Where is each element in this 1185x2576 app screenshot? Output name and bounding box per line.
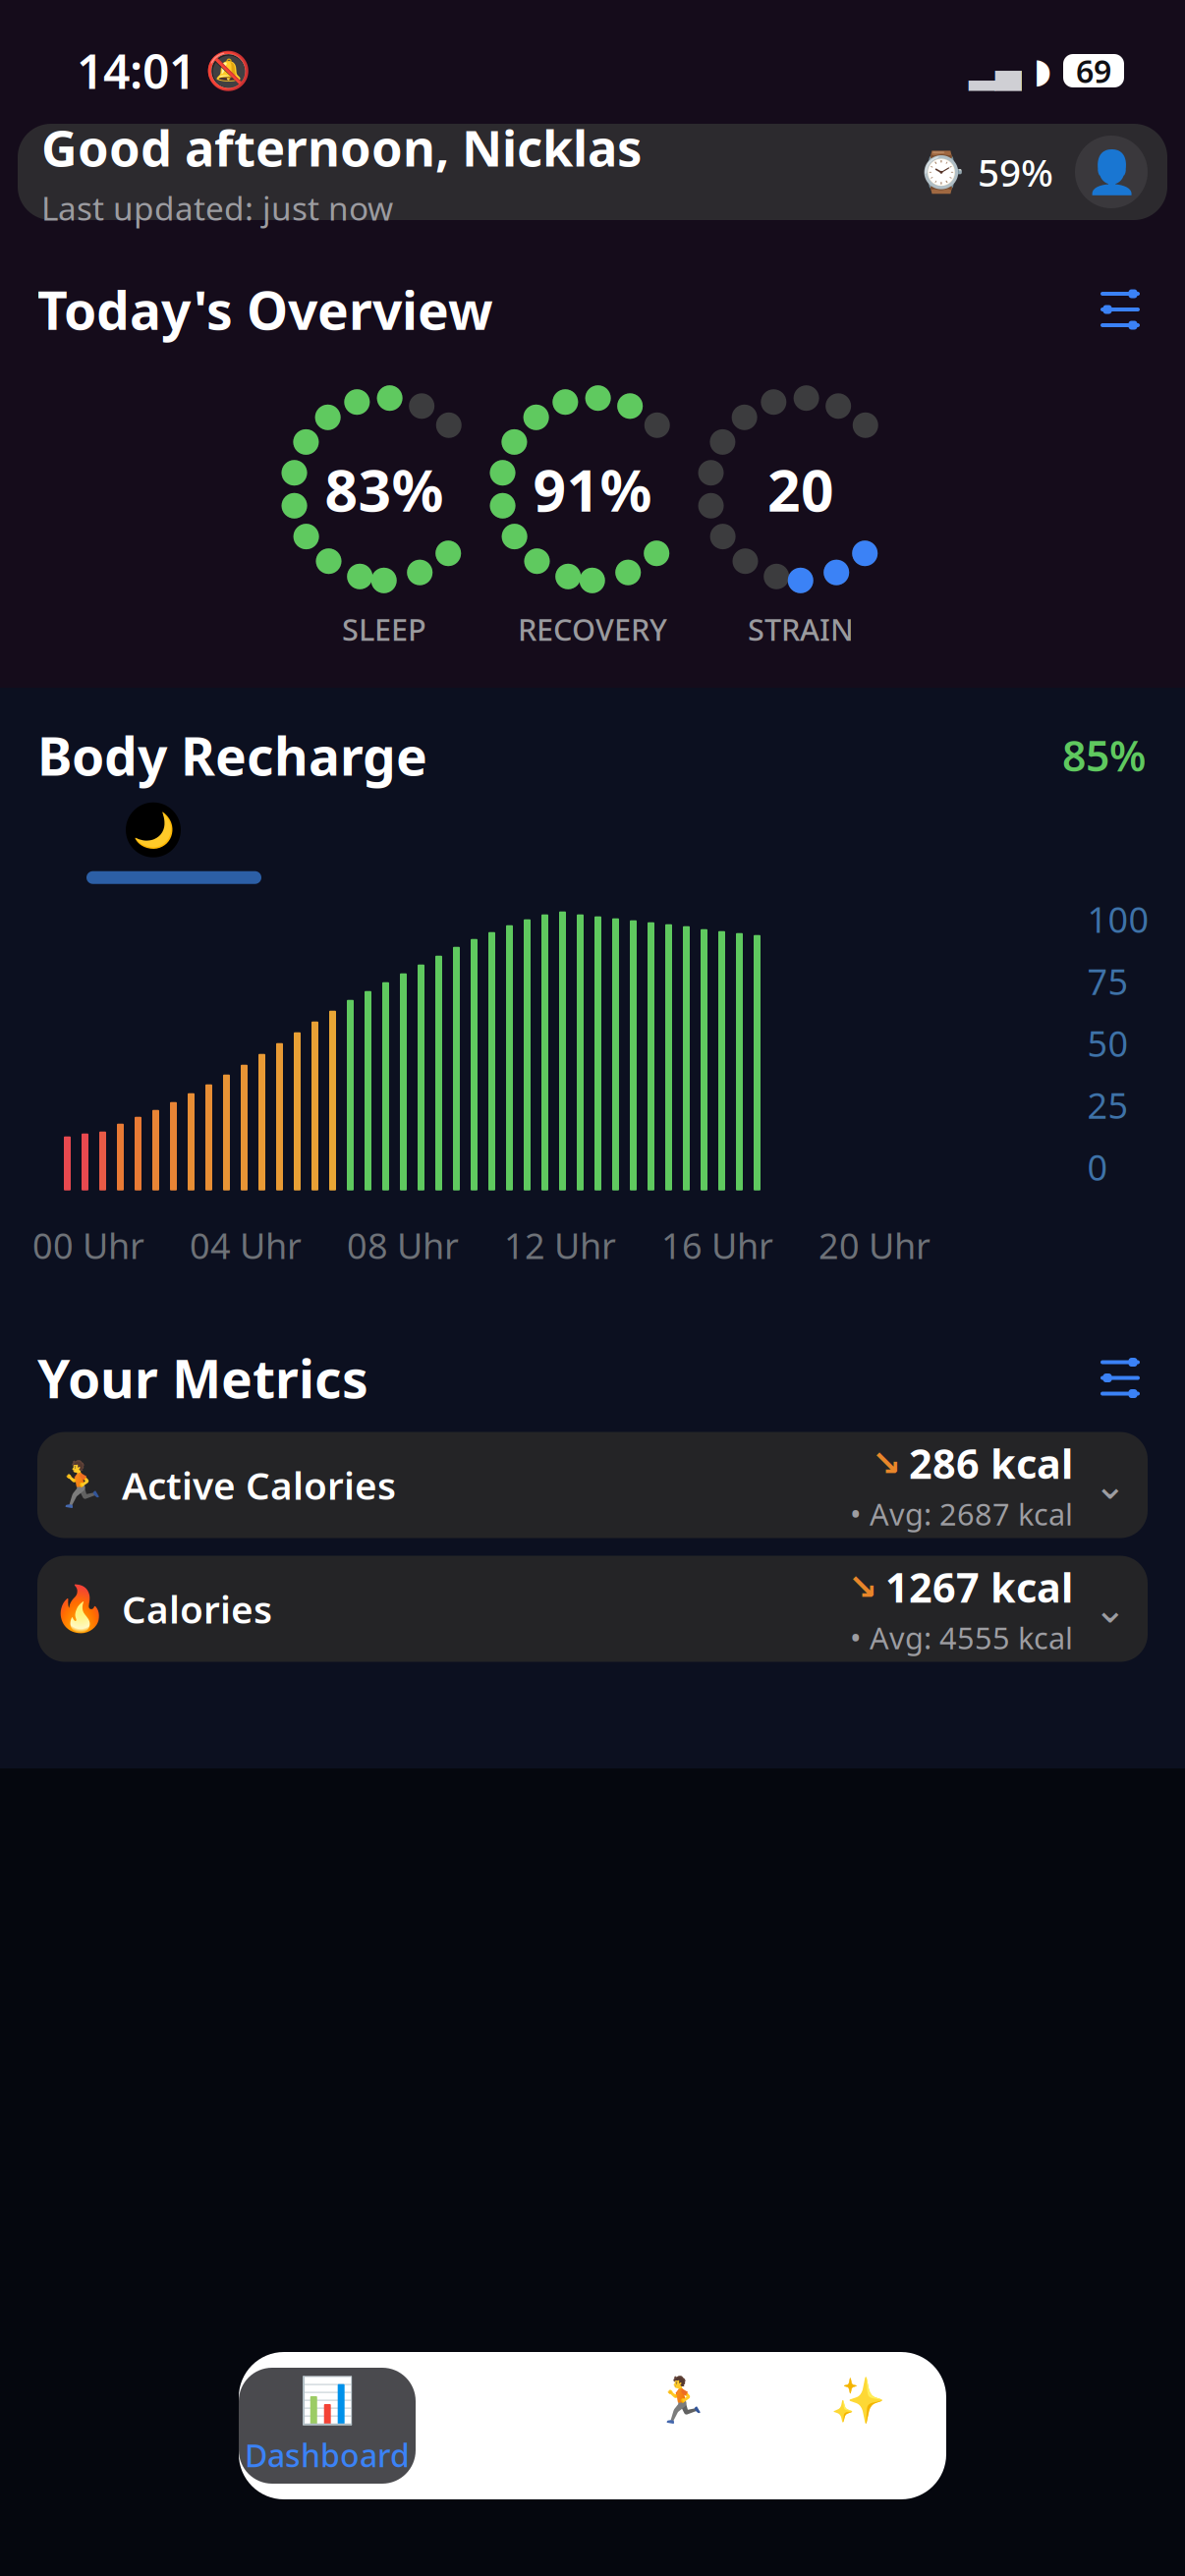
staticText: Body Recharge [37,720,427,790]
staticText: 100 [1087,896,1149,943]
staticText: 59% [978,147,1053,197]
staticText: Dashboard [245,2434,410,2476]
staticText: • Avg: 2687 kcal [850,1494,1073,1534]
staticText: 85% [1062,727,1146,783]
staticText: 04 Uhr [190,1222,302,1269]
staticText: 📊 [300,2375,355,2426]
staticText: ↘ [872,1443,901,1483]
staticText: 👤 [1085,148,1137,196]
button[interactable]: 📊 [239,2368,416,2484]
staticText: ▂▄ [969,51,1022,90]
staticText: ↘ [848,1567,877,1607]
staticText: 08 Uhr [347,1222,459,1269]
staticText: Your Metrics [37,1343,368,1413]
staticText: 83% [325,451,444,527]
staticText: 75 [1087,958,1129,1005]
staticText: Last updated: just now [41,186,393,230]
staticText: 00 Uhr [32,1222,144,1269]
button[interactable]: 🏃 [37,1432,1148,1538]
staticText: 16 Uhr [661,1222,773,1269]
button[interactable]: 🔥 [37,1556,1148,1662]
staticText: SLEEP [342,609,426,649]
button[interactable]: Filter overview [1099,290,1185,329]
staticText: 🔥 [52,1583,107,1634]
staticText: 0 [1087,1143,1108,1190]
button[interactable]: Filter metrics [1099,1358,1185,1398]
staticText: RECOVERY [518,609,667,649]
staticText: Active Calories [122,1460,396,1510]
staticText: 69 [1076,50,1111,92]
button[interactable]: 🏃 [592,2368,769,2484]
staticText: • Avg: 4555 kcal [850,1618,1073,1658]
staticText: Calories [122,1584,272,1634]
staticText: 50 [1087,1020,1129,1067]
staticText: ✨ [830,2375,885,2426]
staticText: ⌄ [1094,1586,1127,1631]
staticText: 🌙 [132,810,174,849]
staticText: 🏃 [653,2375,708,2426]
staticText: 1267 kcal [885,1560,1073,1614]
staticText: 20 [767,451,834,527]
staticText: ◗ [1034,51,1051,90]
button[interactable]: ✨ [769,2368,946,2484]
staticText: Today's Overview [37,275,493,344]
staticText: 🔕 [205,50,251,92]
staticText: 91% [533,451,652,527]
staticText: 286 kcal [909,1436,1073,1490]
staticText: 12 Uhr [504,1222,616,1269]
staticText: 🏃 [52,1460,107,1510]
staticText: Good afternoon, Nicklas [41,114,642,180]
staticText: STRAIN [748,609,854,649]
staticText: 20 Uhr [818,1222,931,1269]
staticText: ⌚ [917,149,966,194]
staticText: 14:01 [77,39,196,102]
staticText: ⌄ [1094,1463,1127,1507]
button[interactable]: Good afternoon, Nicklas [0,124,1185,220]
staticText: 25 [1087,1082,1129,1129]
